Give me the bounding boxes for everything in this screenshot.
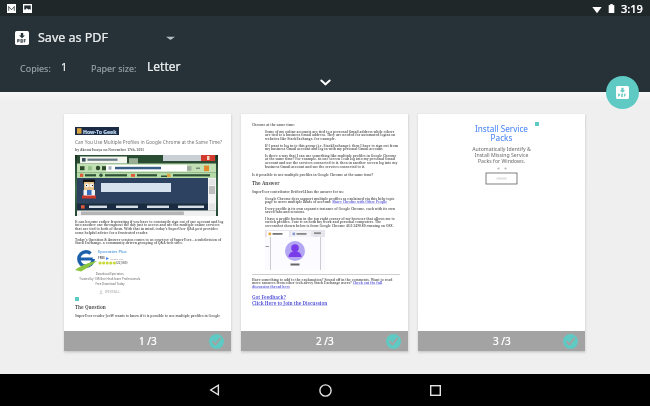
staticText: Today's Question & Answer session comes …	[75, 237, 224, 245]
staticText: SuperUser contributor Drifter64 has the …	[252, 189, 344, 193]
staticText: 2 /3	[316, 334, 334, 348]
staticText: Download Epocrates. Trusted by 1 Million…	[79, 272, 141, 285]
staticText: Some of my online accounts are tied to a…	[265, 129, 400, 141]
staticText: How-To Geek	[83, 128, 117, 135]
staticText: Install Service Packs	[475, 123, 528, 144]
staticText: Can You Use Multiple Profiles in Google …	[75, 139, 222, 145]
staticText: Have something to add to the explanation…	[252, 277, 400, 289]
staticText: The Answer	[252, 180, 280, 186]
button[interactable]: Save as PDF	[0, 24, 650, 50]
staticText: If I want to log in to this group (i.e. …	[265, 143, 400, 151]
staticText: by Akemi Iwaya on November 17th, 2015	[75, 147, 145, 152]
staticText: SuperUser reader JoeW wants to know if i…	[75, 313, 221, 317]
button[interactable]: Recent apps	[413, 374, 457, 406]
staticText: Got Feedback?	[252, 294, 286, 300]
button[interactable]: Back	[193, 374, 237, 406]
staticText: The Question	[75, 304, 106, 310]
staticText: Letter	[147, 58, 181, 74]
staticText: Chrome at the same time:	[252, 122, 295, 126]
button[interactable]: Install Service Packs	[418, 114, 585, 351]
staticText: Every profile is its own separate instan…	[265, 206, 400, 214]
staticText: FREE	[98, 256, 105, 260]
button[interactable]: Home	[303, 374, 347, 406]
staticText: Click Here to Join the Discussion	[252, 300, 328, 306]
staticText: Is there a way that I can use something …	[265, 153, 400, 169]
staticText: 3 /3	[493, 334, 511, 348]
button[interactable]: Save as PDF	[606, 76, 639, 109]
staticText: INSTALL	[105, 289, 121, 294]
button[interactable]: Expand options	[0, 74, 650, 91]
staticText: 1 /3	[139, 334, 157, 348]
staticText: (22,580)	[116, 261, 128, 265]
staticText: Automatically Identify & Install Missing…	[472, 145, 531, 164]
staticText: Paper size:	[91, 62, 137, 74]
staticText: Is it possible to use multiple profiles …	[252, 172, 374, 176]
staticText: Google Play	[110, 257, 124, 260]
staticText: 1	[61, 59, 68, 74]
staticText: Epocrates Plus	[98, 249, 127, 255]
button[interactable]: How-To Geek	[64, 114, 231, 351]
button[interactable]: Chrome at the same time:	[241, 114, 408, 351]
staticText: Save as PDF	[38, 29, 108, 46]
staticText: Copies:	[20, 62, 51, 74]
staticText: 3:19	[621, 1, 643, 16]
staticText: Google Chrome does support multiple prof…	[265, 196, 400, 204]
staticText: It can become rather frustrating if you …	[75, 219, 224, 235]
staticText: I have a profile button in the top right…	[265, 216, 400, 228]
